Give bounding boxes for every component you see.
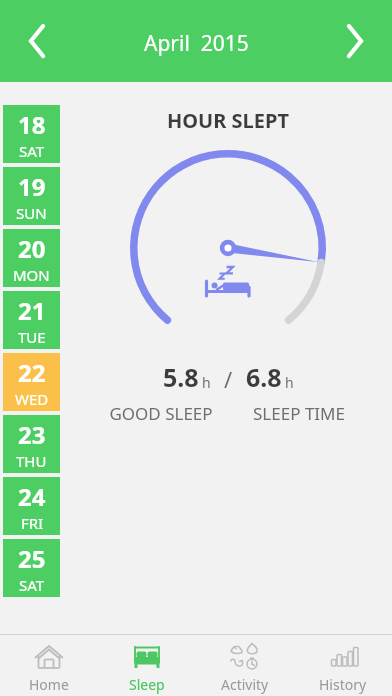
staticText: SLEEP TIME: [236, 402, 362, 425]
button[interactable]: Activity: [196, 635, 294, 696]
staticText: GOOD SLEEP: [94, 402, 228, 425]
button[interactable]: 24: [3, 477, 60, 535]
staticText: Sleep: [129, 675, 165, 694]
button[interactable]: 25: [3, 539, 60, 597]
staticText: THU: [16, 451, 47, 471]
staticText: h: [285, 373, 294, 392]
button[interactable]: 21: [3, 291, 60, 349]
button[interactable]: Sleep: [98, 635, 196, 696]
staticText: 21: [18, 294, 46, 327]
staticText: History: [319, 675, 367, 694]
button[interactable]: 23: [3, 415, 60, 473]
staticText: SAT: [19, 575, 45, 595]
button[interactable]: Home: [0, 635, 98, 696]
staticText: 19: [18, 170, 46, 203]
button[interactable]: 18: [3, 105, 60, 163]
staticText: 5.8: [163, 360, 199, 394]
staticText: Activity: [221, 675, 269, 694]
staticText: /: [224, 364, 233, 394]
staticText: 24: [18, 480, 46, 513]
staticText: SAT: [19, 141, 45, 161]
staticText: Home: [29, 675, 69, 694]
staticText: SUN: [16, 203, 47, 223]
button[interactable]: 20: [3, 229, 60, 287]
staticText: HOUR SLEPT: [167, 107, 289, 134]
staticText: 25: [18, 542, 46, 575]
staticText: 18: [18, 108, 46, 141]
button[interactable]: Previous month: [10, 14, 64, 68]
staticText: FRI: [21, 513, 44, 533]
staticText: 6.8: [246, 360, 282, 394]
staticText: 23: [18, 418, 46, 451]
staticText: MON: [13, 265, 50, 285]
staticText: h: [202, 373, 211, 392]
staticText: TUE: [18, 327, 46, 347]
button[interactable]: History: [294, 635, 392, 696]
staticText: 22: [18, 356, 46, 389]
staticText: April 2015: [144, 29, 249, 58]
button[interactable]: Next month: [328, 14, 382, 68]
button[interactable]: 22: [3, 353, 60, 411]
staticText: 20: [18, 232, 46, 265]
button[interactable]: 19: [3, 167, 60, 225]
staticText: WED: [15, 389, 49, 409]
